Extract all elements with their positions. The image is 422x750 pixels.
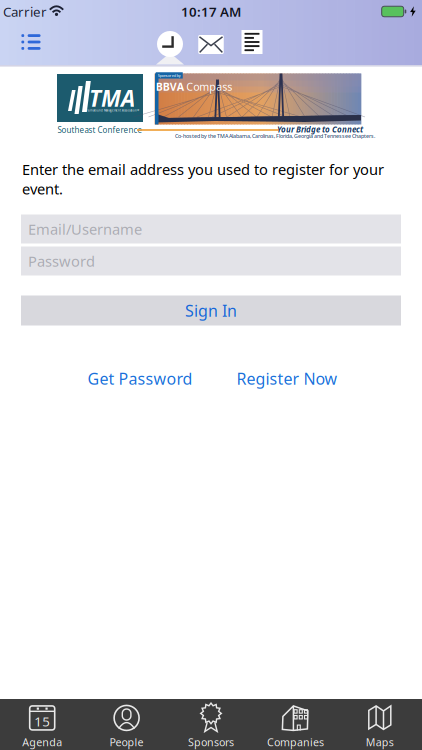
button[interactable]: Register Now xyxy=(230,364,343,393)
staticText: TMA xyxy=(89,83,135,113)
staticText: 15 xyxy=(34,712,50,730)
staticText: Agenda xyxy=(22,735,62,749)
button[interactable]: Sign In xyxy=(21,295,401,325)
button[interactable] xyxy=(241,30,262,54)
button[interactable]: Get Password xyxy=(81,364,198,393)
staticText: Companies xyxy=(267,735,324,749)
staticText: 10:17 AM xyxy=(181,3,241,20)
staticText: Enter the email address you used to regi… xyxy=(22,159,384,198)
button[interactable] xyxy=(198,35,224,54)
staticText: Your Bridge to Connect xyxy=(277,124,363,135)
button[interactable]: People xyxy=(84,703,169,749)
staticText: Register Now xyxy=(236,368,337,389)
button[interactable]: Companies xyxy=(253,703,338,749)
staticText: Get Password xyxy=(87,368,192,389)
staticText: Maps xyxy=(366,735,394,749)
button[interactable] xyxy=(21,34,40,50)
staticText: Email/Username xyxy=(28,219,142,239)
staticText: Southeast Conference xyxy=(57,125,142,135)
button[interactable]: 15 xyxy=(0,703,84,749)
staticText: Carrier xyxy=(3,3,47,20)
staticText: Compass xyxy=(186,80,232,94)
staticText: Password xyxy=(28,251,95,271)
staticText: Turnaround Management Association® xyxy=(87,109,139,112)
button[interactable]: Sponsors xyxy=(169,703,253,749)
button[interactable] xyxy=(157,31,183,57)
staticText: Sponsors xyxy=(188,735,234,749)
staticText: People xyxy=(110,735,144,749)
staticText: Sign In xyxy=(185,300,237,321)
staticText: BBVA xyxy=(156,80,184,94)
button[interactable]: Maps xyxy=(338,703,422,749)
staticText: Co-hosted by the TMA Alabama, Carolinas,… xyxy=(175,132,375,140)
staticText: Sponsored by xyxy=(158,73,181,78)
